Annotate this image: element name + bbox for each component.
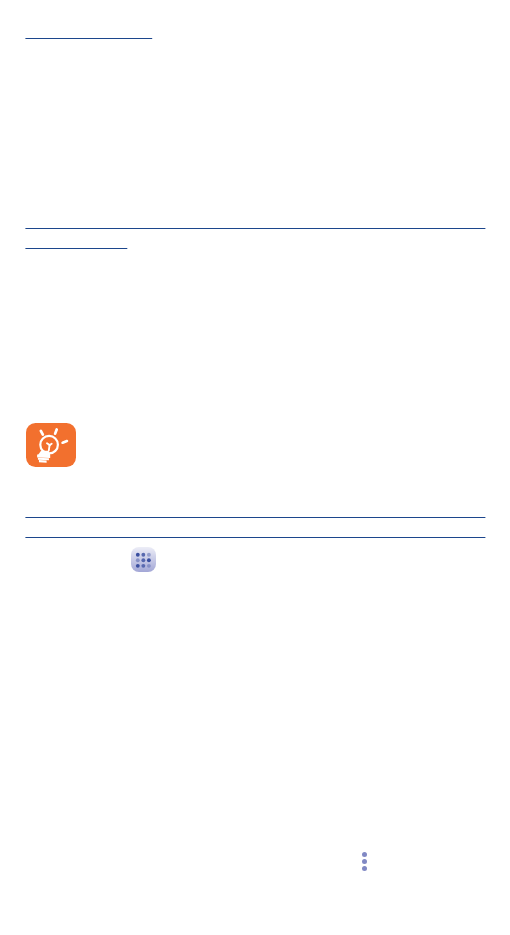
button[interactable]: Link	[25, 522, 485, 540]
button[interactable]: Tips app icon	[26, 423, 76, 467]
button[interactable]: All apps icon	[131, 547, 156, 572]
button[interactable]: More options	[353, 844, 375, 878]
button[interactable]: Link	[25, 213, 485, 231]
button[interactable]: Link	[25, 23, 152, 41]
button[interactable]: Link	[25, 502, 485, 520]
button[interactable]: Link	[25, 233, 127, 251]
